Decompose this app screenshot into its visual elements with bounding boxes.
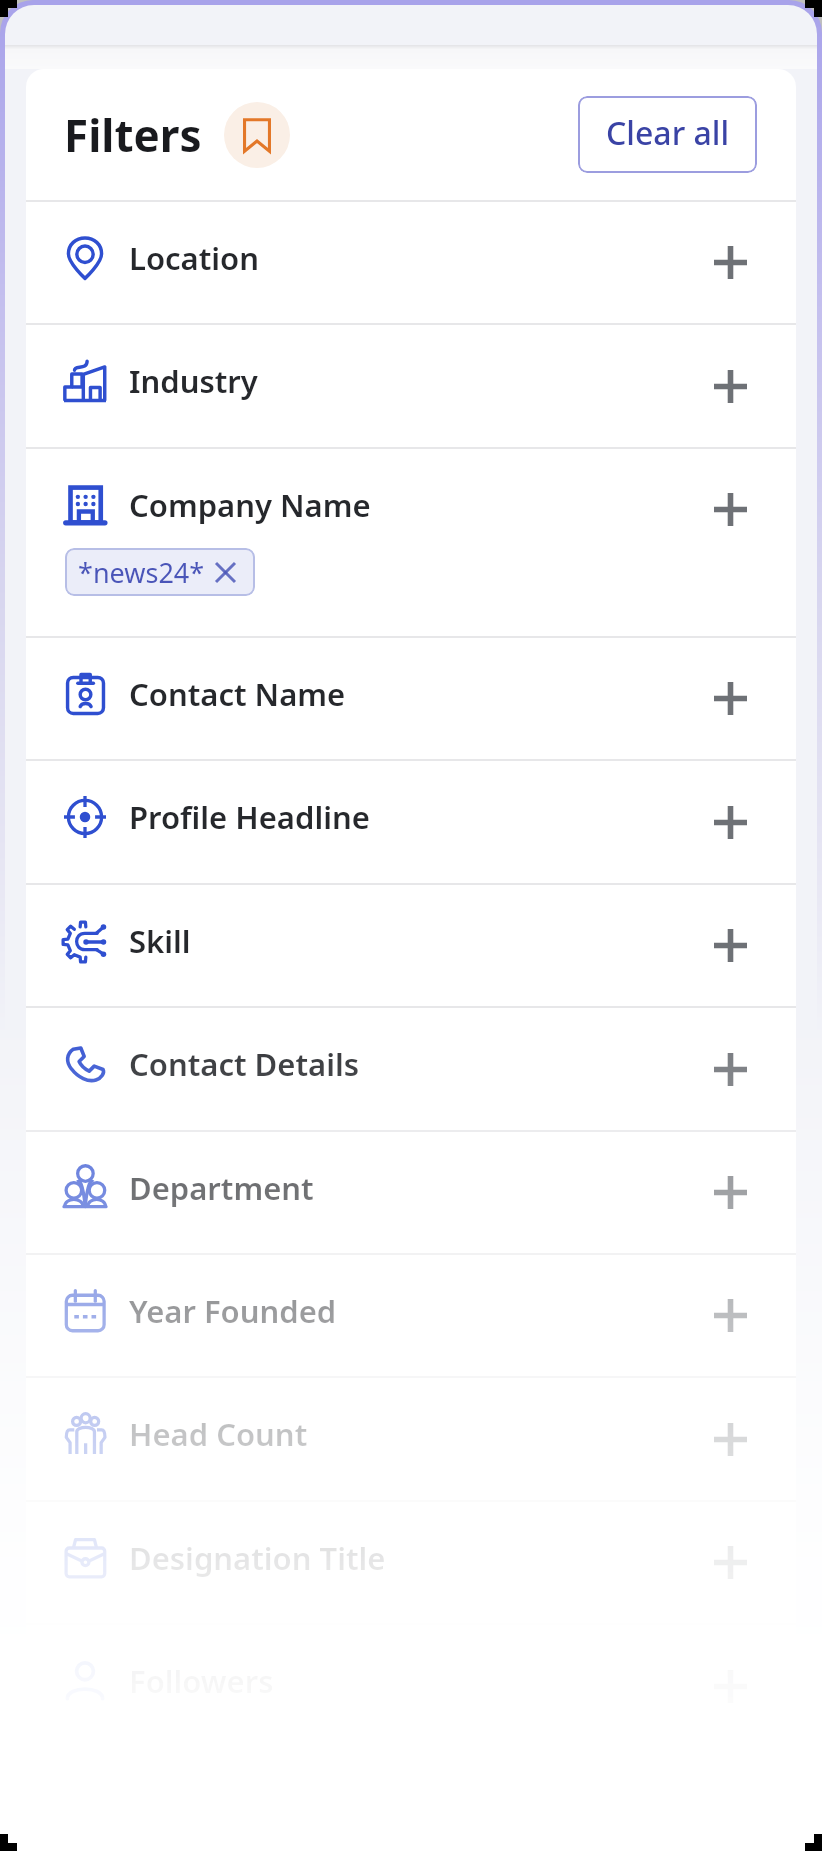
button[interactable]: Company Name	[26, 449, 796, 636]
button[interactable]: Contact Details	[26, 1008, 796, 1130]
other: Add filter	[714, 1176, 747, 1209]
other: Add filter	[714, 929, 747, 962]
staticText: Year Founded	[129, 1290, 337, 1332]
button[interactable]: Location	[26, 202, 796, 323]
button[interactable]: Saved filters	[224, 102, 290, 168]
staticText: Filters	[64, 105, 202, 165]
staticText: Designation Title	[129, 1537, 386, 1579]
staticText: Contact Name	[129, 673, 346, 715]
button[interactable]: Designation Title	[26, 1502, 796, 1623]
other: Add filter	[714, 806, 747, 839]
button[interactable]: Skill	[26, 885, 796, 1006]
button[interactable]: Year Founded	[26, 1255, 796, 1376]
other: Add filter	[714, 1423, 747, 1456]
button[interactable]: Head Count	[26, 1378, 796, 1500]
other: Add filter	[714, 246, 747, 279]
other: Add filter	[714, 370, 747, 403]
staticText: *news24*	[78, 554, 205, 591]
button[interactable]: *news24*	[65, 548, 255, 596]
staticText: Industry	[129, 360, 258, 402]
other: Add filter	[714, 1299, 747, 1332]
staticText: Clear all	[606, 111, 730, 155]
button[interactable]: Profile Headline	[26, 761, 796, 883]
staticText: Followers	[129, 1660, 274, 1702]
staticText: Company Name	[129, 484, 371, 526]
button[interactable]: Clear all	[578, 96, 757, 173]
staticText: Contact Details	[129, 1043, 359, 1085]
staticText: Department	[129, 1167, 314, 1209]
other: Add filter	[714, 1546, 747, 1579]
other: Add filter	[714, 1053, 747, 1086]
other: Add filter	[714, 493, 747, 526]
staticText: Profile Headline	[129, 796, 370, 838]
staticText: Location	[129, 237, 260, 279]
button[interactable]: Contact Name	[26, 638, 796, 759]
other: Add filter	[714, 682, 747, 715]
staticText: Head Count	[129, 1413, 308, 1455]
button[interactable]: Department	[26, 1132, 796, 1253]
button[interactable]: Industry	[26, 325, 796, 447]
staticText: Skill	[129, 920, 191, 962]
